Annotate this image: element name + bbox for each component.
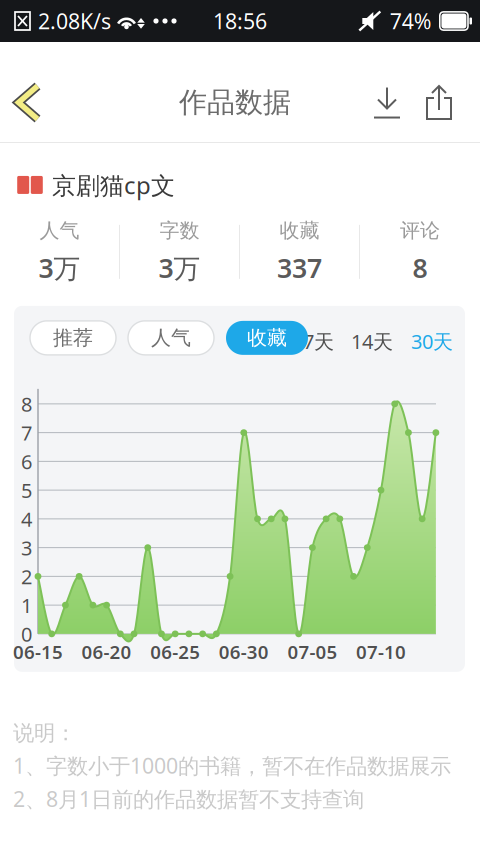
staticText: 2 <box>21 563 32 590</box>
staticText: 337 <box>277 250 322 285</box>
button[interactable]: 收藏 <box>226 321 308 355</box>
staticText: 说明： <box>13 720 76 746</box>
staticText: 07-05 <box>287 639 337 664</box>
staticText: 06-30 <box>219 639 269 664</box>
staticText: 8 <box>21 391 32 417</box>
staticText: 7 <box>21 419 32 446</box>
staticText: 4 <box>21 506 32 532</box>
staticText: 京剧猫cp文 <box>52 169 175 201</box>
staticText: 字数 <box>159 218 199 243</box>
staticText: 人气 <box>151 326 191 350</box>
staticText: 14天 <box>351 328 393 354</box>
staticText: 06-15 <box>13 639 63 664</box>
staticText: 收藏 <box>247 326 287 350</box>
button[interactable]: Share <box>414 52 464 153</box>
button[interactable]: 30天 <box>411 328 453 354</box>
staticText: 评论 <box>400 218 440 243</box>
staticText: 3万 <box>38 250 80 285</box>
staticText: 0 <box>21 621 32 647</box>
button[interactable]: 推荐 <box>30 321 116 355</box>
staticText: 18:56 <box>213 7 267 35</box>
staticText: 06-25 <box>150 639 200 664</box>
staticText: 3 <box>21 534 32 561</box>
staticText: 06-20 <box>82 639 132 664</box>
staticText: 74% <box>390 7 432 35</box>
staticText: 8 <box>412 250 427 285</box>
staticText: 作品数据 <box>179 85 291 120</box>
staticText: 2.08K/s <box>38 7 111 35</box>
staticText: 6 <box>21 448 32 475</box>
staticText: 07-10 <box>356 639 406 664</box>
staticText: 30天 <box>411 328 453 354</box>
staticText: 推荐 <box>53 326 93 350</box>
staticText: 3万 <box>158 250 200 285</box>
staticText: 7天 <box>303 328 334 354</box>
button[interactable]: 人气 <box>128 321 214 355</box>
staticText: 5 <box>21 477 32 503</box>
button[interactable]: 7天 <box>303 328 334 354</box>
staticText: 收藏 <box>279 218 319 243</box>
staticText: 1、字数小于1000的书籍，暂不在作品数据展示 <box>13 751 451 780</box>
button[interactable]: 14天 <box>351 328 393 354</box>
staticText: 人气 <box>39 218 79 243</box>
button[interactable]: Back <box>0 52 56 153</box>
staticText: 1 <box>21 592 32 618</box>
button[interactable]: Download <box>360 52 414 153</box>
staticText: 2、8月1日前的作品数据暂不支持查询 <box>13 785 364 813</box>
